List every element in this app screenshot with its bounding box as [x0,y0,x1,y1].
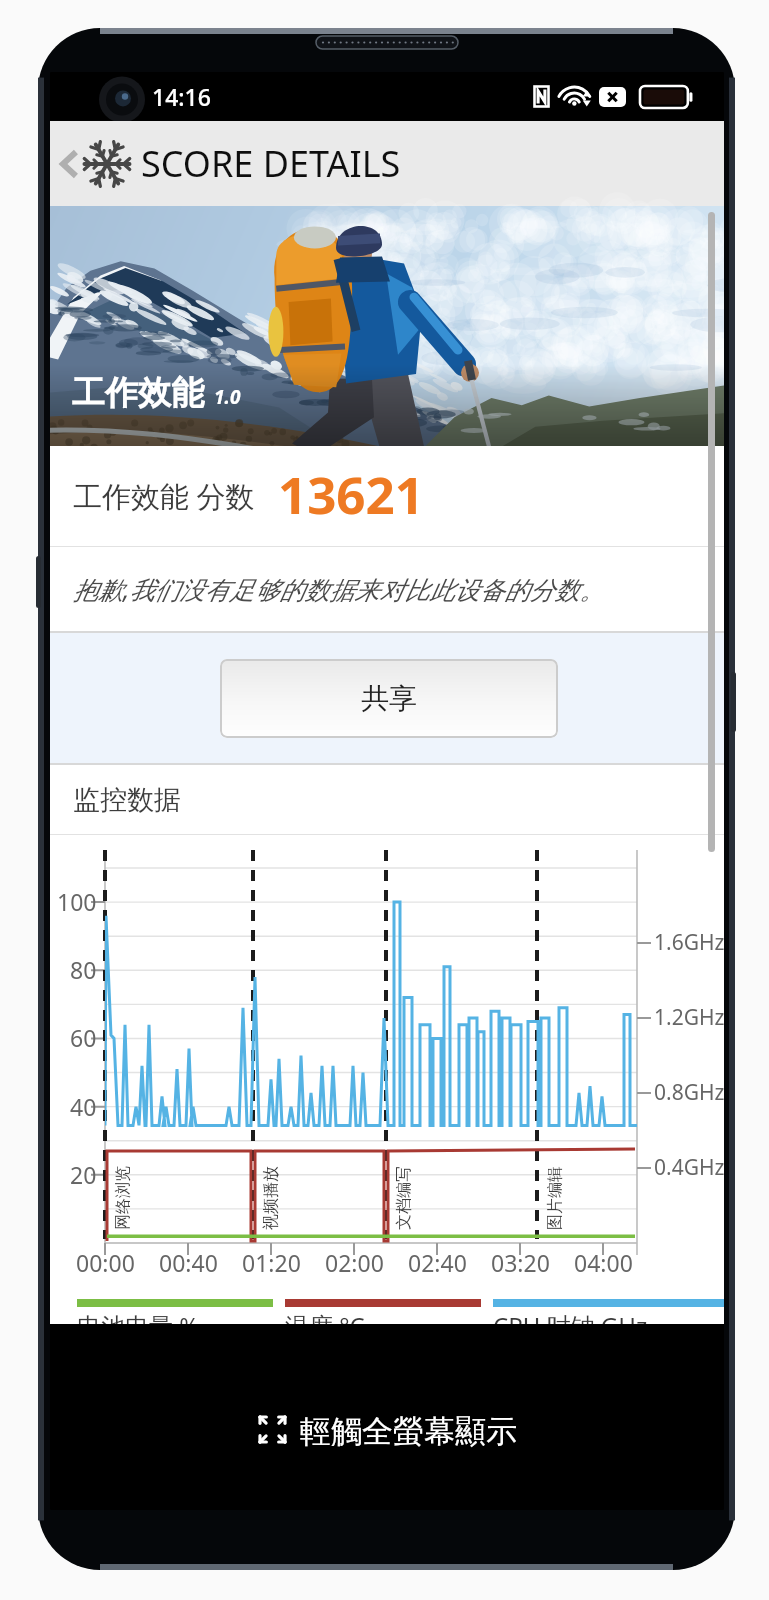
staticText: 60 [70,1022,97,1053]
staticText: 1.2GHz [654,1003,724,1032]
staticText: 1.6GHz [654,928,724,957]
staticText: 14:16 [152,81,211,112]
staticText: 网络浏览 [113,1166,133,1230]
other: Back [59,141,77,187]
button[interactable]: Back [50,121,724,206]
staticText: 0.4GHz [654,1153,724,1182]
staticText: 輕觸全螢幕顯示 [300,1412,517,1451]
staticText: 图片编辑 [545,1166,565,1230]
staticText: 02:40 [408,1247,467,1278]
staticText: 00:40 [159,1247,218,1278]
staticText: CPU 时钟 GHz [493,1309,648,1342]
staticText: 80 [70,954,97,985]
staticText: 04:00 [574,1247,633,1278]
staticText: 13621 [278,459,424,528]
staticText: 工作效能 [72,372,204,414]
staticText: 工作效能 分数 [73,476,255,516]
staticText: 01:20 [242,1247,301,1278]
staticText: 电池电量 % [77,1309,200,1342]
staticText: 20 [70,1159,97,1190]
staticText: 03:20 [491,1247,550,1278]
staticText: 00:00 [76,1247,135,1278]
staticText: 02:00 [325,1247,384,1278]
staticText: 监控数据 [73,783,181,817]
button[interactable]: 輕觸全螢幕顯示 [50,1324,724,1510]
staticText: 文档编写 [394,1166,414,1230]
staticText: SCORE DETAILS [141,139,401,188]
staticText: 0.8GHz [654,1078,724,1107]
staticText: 40 [70,1091,97,1122]
staticText: 100 [57,886,97,917]
staticText: 视频播放 [261,1166,281,1230]
button[interactable]: 共享 [220,659,558,738]
staticText: 1.0 [214,384,241,410]
staticText: 抱歉,我们没有足够的数据来对比此设备的分数。 [73,572,605,606]
staticText: 共享 [361,681,417,716]
staticText: 温度 °C [285,1309,365,1342]
